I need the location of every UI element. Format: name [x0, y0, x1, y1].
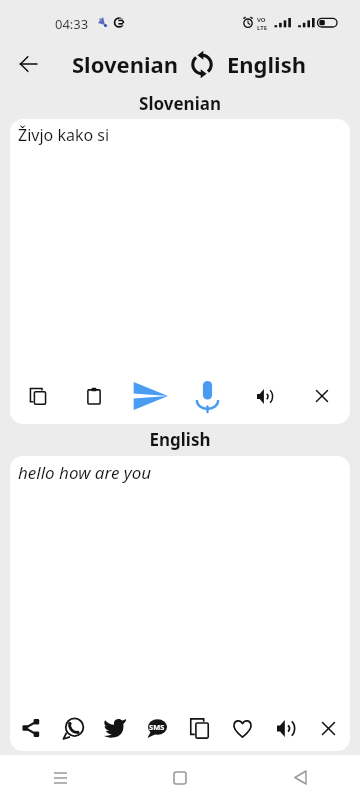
staticText: SMS	[149, 722, 165, 732]
staticText: 04:33	[55, 15, 89, 33]
button[interactable]: Back	[240, 755, 360, 800]
button[interactable]: Paste	[66, 373, 122, 419]
button[interactable]: Copy	[178, 705, 221, 751]
button[interactable]: Share	[10, 705, 52, 751]
button[interactable]: Voice input	[179, 373, 236, 419]
staticText: LTE	[257, 24, 268, 32]
staticText: English	[0, 428, 360, 451]
button[interactable]: Twitter	[94, 705, 136, 751]
staticText: English	[227, 49, 307, 79]
staticText: Živjo kako si	[18, 124, 110, 146]
staticText: hello how are you	[18, 461, 152, 484]
staticText: Slovenian	[0, 92, 360, 115]
button[interactable]: Clear	[307, 705, 350, 751]
button[interactable]: Clear	[293, 373, 350, 419]
button[interactable]: Swap languages	[179, 41, 227, 87]
button[interactable]: Translate	[122, 373, 179, 419]
button[interactable]: Send SMS	[136, 705, 178, 751]
button[interactable]: Speak	[264, 705, 307, 751]
button[interactable]: Speak	[236, 373, 293, 419]
staticText: Slovenian	[72, 49, 179, 79]
staticText: VO	[257, 16, 266, 24]
button[interactable]: Back	[10, 46, 46, 82]
button[interactable]: Home	[120, 755, 240, 800]
button[interactable]: WhatsApp	[52, 705, 94, 751]
button[interactable]: Recent apps	[0, 755, 120, 800]
button[interactable]: Favourite	[221, 705, 264, 751]
button[interactable]: Copy	[10, 373, 66, 419]
